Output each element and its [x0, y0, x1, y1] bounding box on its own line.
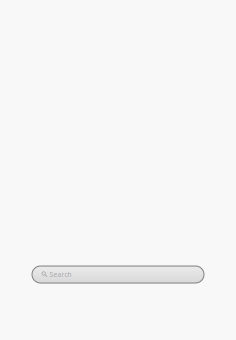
- button[interactable]: Search: [32, 266, 204, 283]
- staticText: Search: [49, 270, 71, 279]
